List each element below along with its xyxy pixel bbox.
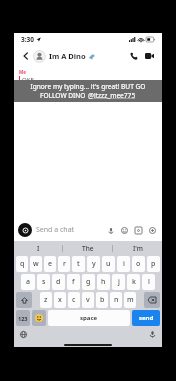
staticText: d [56, 277, 61, 287]
button[interactable]: w [30, 256, 42, 272]
button[interactable]: Emoji [32, 310, 46, 326]
button[interactable]: Back [20, 50, 32, 62]
button[interactable]: u [102, 256, 115, 272]
staticText: m [127, 295, 134, 305]
button[interactable]: Backspace [144, 292, 160, 308]
staticText: Me [19, 69, 26, 75]
staticText: f [72, 277, 75, 287]
button[interactable]: h [97, 274, 110, 290]
staticText: s [42, 277, 46, 287]
button[interactable]: space [48, 310, 130, 326]
button[interactable]: Voice note [105, 225, 116, 236]
button[interactable]: send [132, 310, 160, 326]
staticText: k [132, 277, 136, 287]
staticText: I [37, 244, 40, 253]
staticText: 3:30 [21, 35, 34, 44]
staticText: j [118, 277, 120, 287]
staticText: e [48, 259, 53, 269]
button[interactable]: t [72, 256, 85, 272]
staticText: 123 [18, 315, 28, 322]
button[interactable]: Dictate [148, 330, 157, 339]
button[interactable]: c [68, 292, 80, 308]
staticText: v [86, 295, 90, 305]
button[interactable]: k [127, 274, 140, 290]
button[interactable]: g [82, 274, 95, 290]
button[interactable]: Add [147, 225, 158, 236]
button[interactable]: Change keyboard [19, 330, 28, 339]
staticText: r [63, 259, 66, 269]
button[interactable]: Call [127, 49, 141, 63]
button[interactable]: n [110, 292, 122, 308]
button[interactable]: e [44, 256, 56, 272]
button[interactable]: o [132, 256, 145, 272]
button[interactable]: y [87, 256, 100, 272]
staticText: i [123, 259, 125, 269]
staticText: Im A Dino [49, 51, 86, 61]
button[interactable]: Video call [142, 49, 156, 63]
button[interactable]: a [21, 274, 35, 290]
staticText: OKE [22, 76, 34, 84]
staticText: c [72, 295, 76, 305]
button[interactable]: Profile [33, 50, 46, 63]
button[interactable]: m [124, 292, 136, 308]
button[interactable]: d [52, 274, 65, 290]
button[interactable]: Camera [18, 223, 32, 237]
staticText: x [58, 295, 62, 305]
button[interactable]: Stickers [119, 225, 130, 236]
button[interactable]: I'm [113, 241, 162, 256]
staticText: The [82, 244, 94, 253]
button[interactable]: j [112, 274, 125, 290]
staticText: w [33, 259, 39, 269]
button[interactable]: f [67, 274, 80, 290]
button[interactable]: b [96, 292, 108, 308]
staticText: Ignore my typing... it's great! BUT GO [30, 82, 146, 91]
staticText: I'm [133, 244, 143, 253]
button[interactable]: Gallery [133, 225, 144, 236]
staticText: o [136, 259, 141, 269]
staticText: y [92, 259, 96, 269]
button[interactable]: The [63, 241, 112, 256]
staticText: send [139, 314, 154, 322]
button[interactable]: s [37, 274, 50, 290]
staticText: n [114, 295, 119, 305]
button[interactable]: i [117, 256, 130, 272]
button[interactable]: z [40, 292, 52, 308]
button[interactable]: Numbers [16, 310, 30, 326]
staticText: q [20, 259, 25, 269]
staticText: b [100, 295, 105, 305]
button[interactable]: v [82, 292, 94, 308]
staticText: l [148, 277, 150, 287]
staticText: FOLLOW DINO [40, 91, 88, 100]
staticText: z [44, 295, 48, 305]
button[interactable]: Shift [16, 292, 32, 308]
staticText: h [101, 277, 106, 287]
button[interactable]: x [54, 292, 66, 308]
button[interactable]: p [147, 256, 160, 272]
button[interactable]: Send a chat [36, 225, 105, 235]
button[interactable]: q [16, 256, 28, 272]
staticText: @itzzz_mee775 [88, 91, 136, 100]
staticText: space [80, 314, 98, 322]
staticText: u [106, 259, 111, 269]
staticText: t [77, 259, 80, 269]
button[interactable]: I [14, 241, 62, 256]
button[interactable]: r [58, 256, 70, 272]
staticText: a [26, 277, 31, 287]
staticText: g [86, 277, 91, 287]
staticText: p [151, 259, 156, 269]
button[interactable]: l [142, 274, 155, 290]
